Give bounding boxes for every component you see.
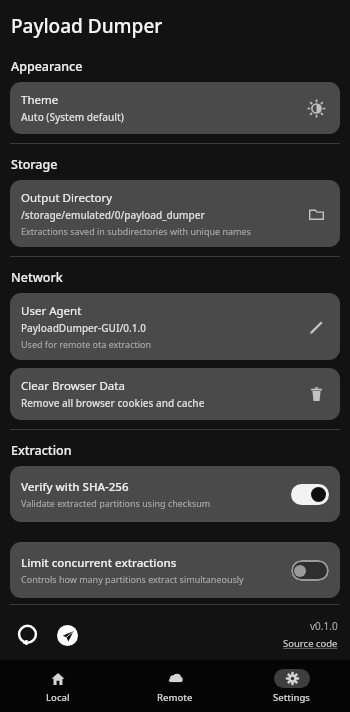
- staticText: Used for remote ota extraction: [21, 338, 152, 350]
- button[interactable]: Output Directory: [10, 180, 340, 247]
- button[interactable]: Clear browser data: [301, 379, 331, 409]
- staticText: Local: [46, 691, 70, 704]
- staticText: Verify with SHA-256: [21, 479, 129, 495]
- staticText: Appearance: [11, 58, 83, 75]
- staticText: Settings: [273, 691, 310, 704]
- staticText: v0.1.0: [310, 619, 338, 633]
- button[interactable]: Change theme: [301, 93, 331, 123]
- staticText: Remove all browser cookies and cache: [21, 396, 205, 410]
- staticText: Clear Browser Data: [21, 378, 125, 394]
- staticText: Storage: [11, 156, 58, 173]
- button[interactable]: Limit concurrent extractions: [10, 542, 340, 598]
- button[interactable]: Theme: [10, 82, 340, 134]
- staticText: Source code: [283, 637, 338, 650]
- staticText: PayloadDumper-GUI/0.1.0: [21, 321, 146, 335]
- staticText: Extractions saved in subdirectories with…: [21, 225, 251, 237]
- staticText: Network: [11, 269, 63, 286]
- staticText: Controls how many partitions extract sim…: [21, 573, 244, 585]
- staticText: Validate extracted partitions using chec…: [21, 497, 211, 509]
- button[interactable]: Clear Browser Data: [10, 368, 340, 420]
- staticText: Remote: [157, 691, 193, 704]
- button[interactable]: Verify with SHA-256: [10, 466, 340, 522]
- button[interactable]: Off: [291, 560, 329, 581]
- staticText: Output Directory: [21, 190, 113, 206]
- button[interactable]: Choose output directory: [301, 199, 331, 229]
- button[interactable]: Source code: [283, 637, 338, 650]
- button[interactable]: GitHub: [14, 622, 40, 648]
- button[interactable]: Remote: [116, 660, 233, 712]
- button[interactable]: Telegram: [54, 622, 80, 648]
- button[interactable]: Local: [0, 660, 116, 712]
- button[interactable]: Edit user agent: [301, 312, 331, 342]
- staticText: Theme: [21, 92, 59, 108]
- button[interactable]: User Agent: [10, 293, 340, 360]
- staticText: Extraction: [11, 442, 72, 459]
- staticText: Limit concurrent extractions: [21, 555, 177, 571]
- staticText: User Agent: [21, 303, 82, 319]
- button[interactable]: Settings: [233, 660, 350, 712]
- staticText: /storage/emulated/0/payload_dumper: [21, 208, 205, 222]
- button[interactable]: On: [291, 484, 329, 505]
- staticText: Payload Dumper: [11, 13, 163, 39]
- staticText: Auto (System default): [21, 110, 124, 124]
